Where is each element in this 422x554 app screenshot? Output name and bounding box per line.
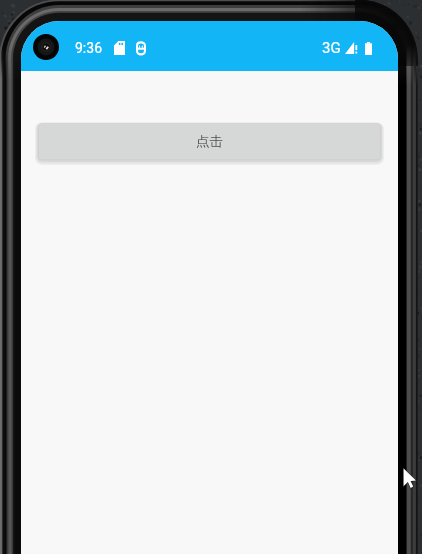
staticText: 3G — [322, 39, 341, 57]
staticText: 点击 — [196, 133, 223, 150]
button[interactable]: 点击 — [39, 124, 380, 159]
staticText: 9:36 — [75, 40, 102, 56]
